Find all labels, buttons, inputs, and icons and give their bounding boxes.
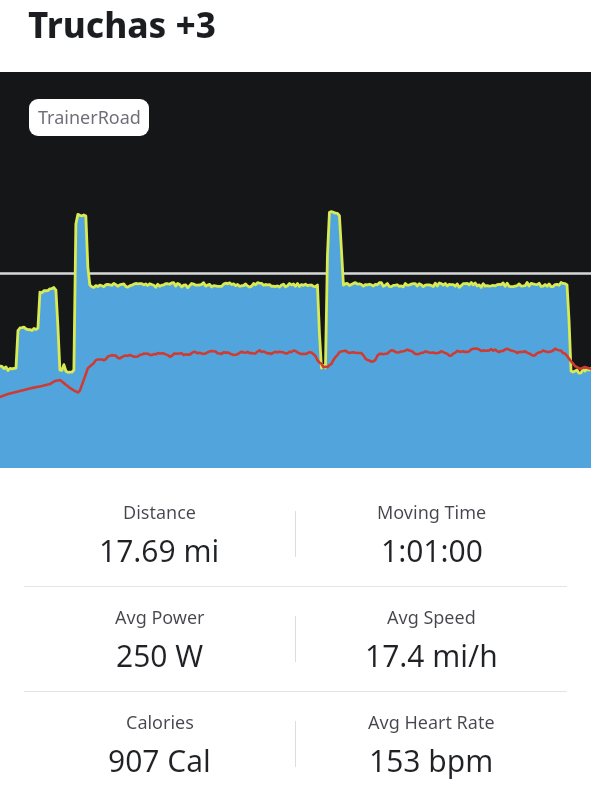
staticText: 1:01:00 (381, 530, 483, 571)
staticText: Distance (123, 500, 196, 525)
staticText: Truchas +3 (28, 1, 216, 49)
staticText: Calories (126, 710, 194, 735)
staticText: 17.69 mi (99, 530, 220, 571)
staticText: Moving Time (377, 500, 487, 525)
staticText: Avg Power (115, 605, 205, 630)
button[interactable]: Moving Time (296, 500, 567, 571)
staticText: TrainerRoad (38, 105, 141, 130)
button[interactable]: Distance (24, 500, 295, 571)
staticText: 907 Cal (108, 740, 211, 781)
staticText: Avg Speed (387, 605, 476, 630)
button[interactable]: Avg Speed (296, 605, 567, 676)
staticText: 250 W (116, 635, 204, 676)
button[interactable]: Calories (24, 710, 295, 781)
staticText: 153 bpm (369, 740, 494, 781)
button[interactable]: TrainerRoad (29, 99, 149, 136)
staticText: 17.4 mi/h (365, 635, 498, 676)
button[interactable]: Avg Heart Rate (296, 710, 567, 781)
staticText: Avg Heart Rate (368, 710, 495, 735)
button[interactable]: Avg Power (24, 605, 295, 676)
